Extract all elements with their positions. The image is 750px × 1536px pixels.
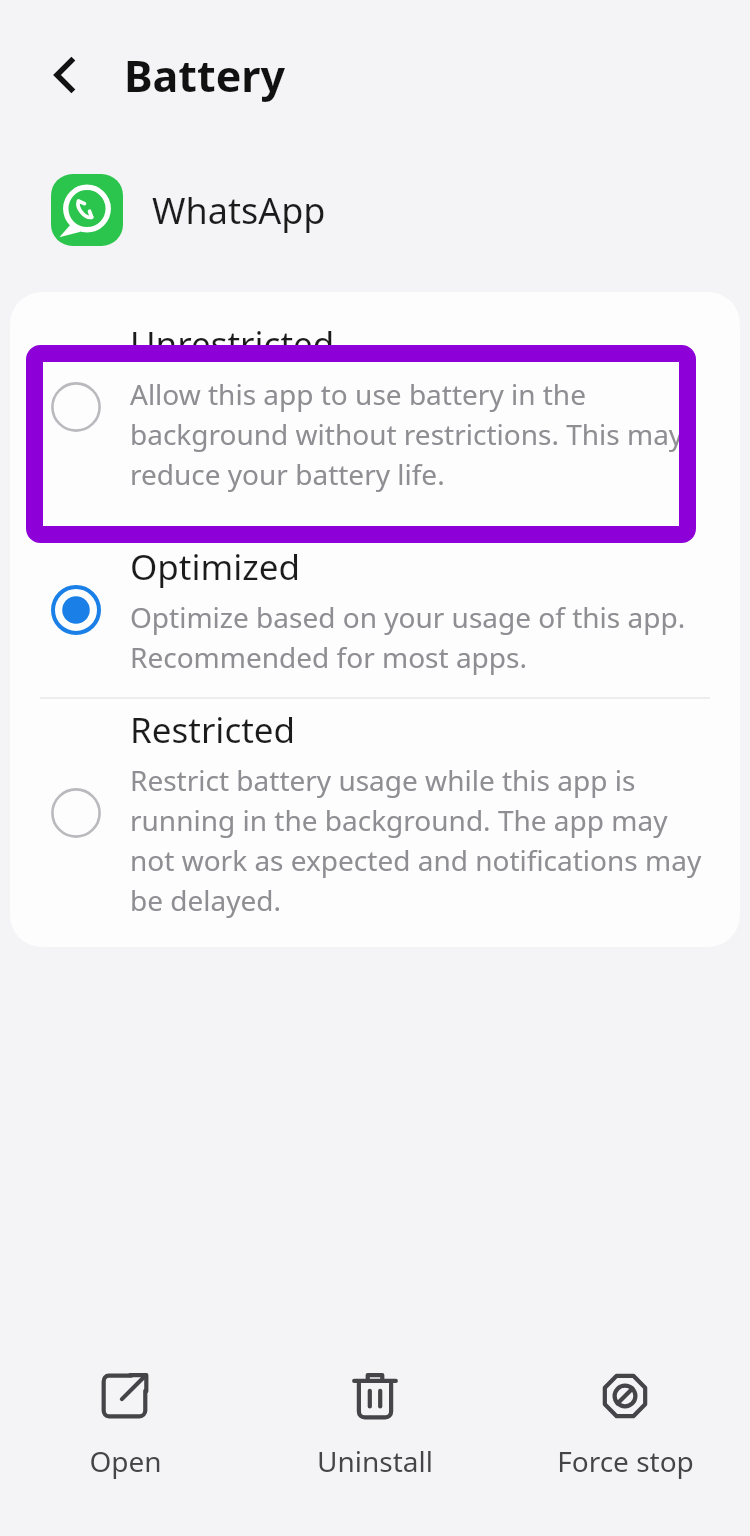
staticText: Restrict battery usage while this app is… bbox=[130, 761, 704, 920]
staticText: Open bbox=[89, 1442, 162, 1480]
button[interactable]: WhatsApp bbox=[0, 150, 750, 270]
staticText: Allow this app to use battery in the bac… bbox=[130, 375, 700, 494]
staticText: Uninstall bbox=[317, 1442, 433, 1480]
staticText: WhatsApp bbox=[152, 186, 326, 235]
button[interactable]: Back bbox=[34, 44, 96, 106]
other: Uninstall bbox=[349, 1370, 401, 1422]
staticText: Battery bbox=[124, 46, 286, 105]
staticText: Optimized bbox=[130, 543, 300, 591]
button[interactable]: Uninstall bbox=[250, 1330, 500, 1520]
button[interactable]: Optimized bbox=[10, 522, 740, 697]
other: Force stop bbox=[599, 1370, 651, 1422]
button[interactable]: Force stop bbox=[500, 1330, 750, 1520]
staticText: Force stop bbox=[557, 1442, 694, 1480]
button[interactable]: Unrestricted bbox=[10, 292, 740, 522]
other: Open bbox=[99, 1370, 151, 1422]
staticText: Restricted bbox=[130, 706, 296, 754]
button[interactable]: Restricted bbox=[10, 699, 740, 927]
staticText: Unrestricted bbox=[130, 320, 335, 368]
staticText: Optimize based on your usage of this app… bbox=[130, 598, 700, 677]
button[interactable]: Open bbox=[0, 1330, 250, 1520]
